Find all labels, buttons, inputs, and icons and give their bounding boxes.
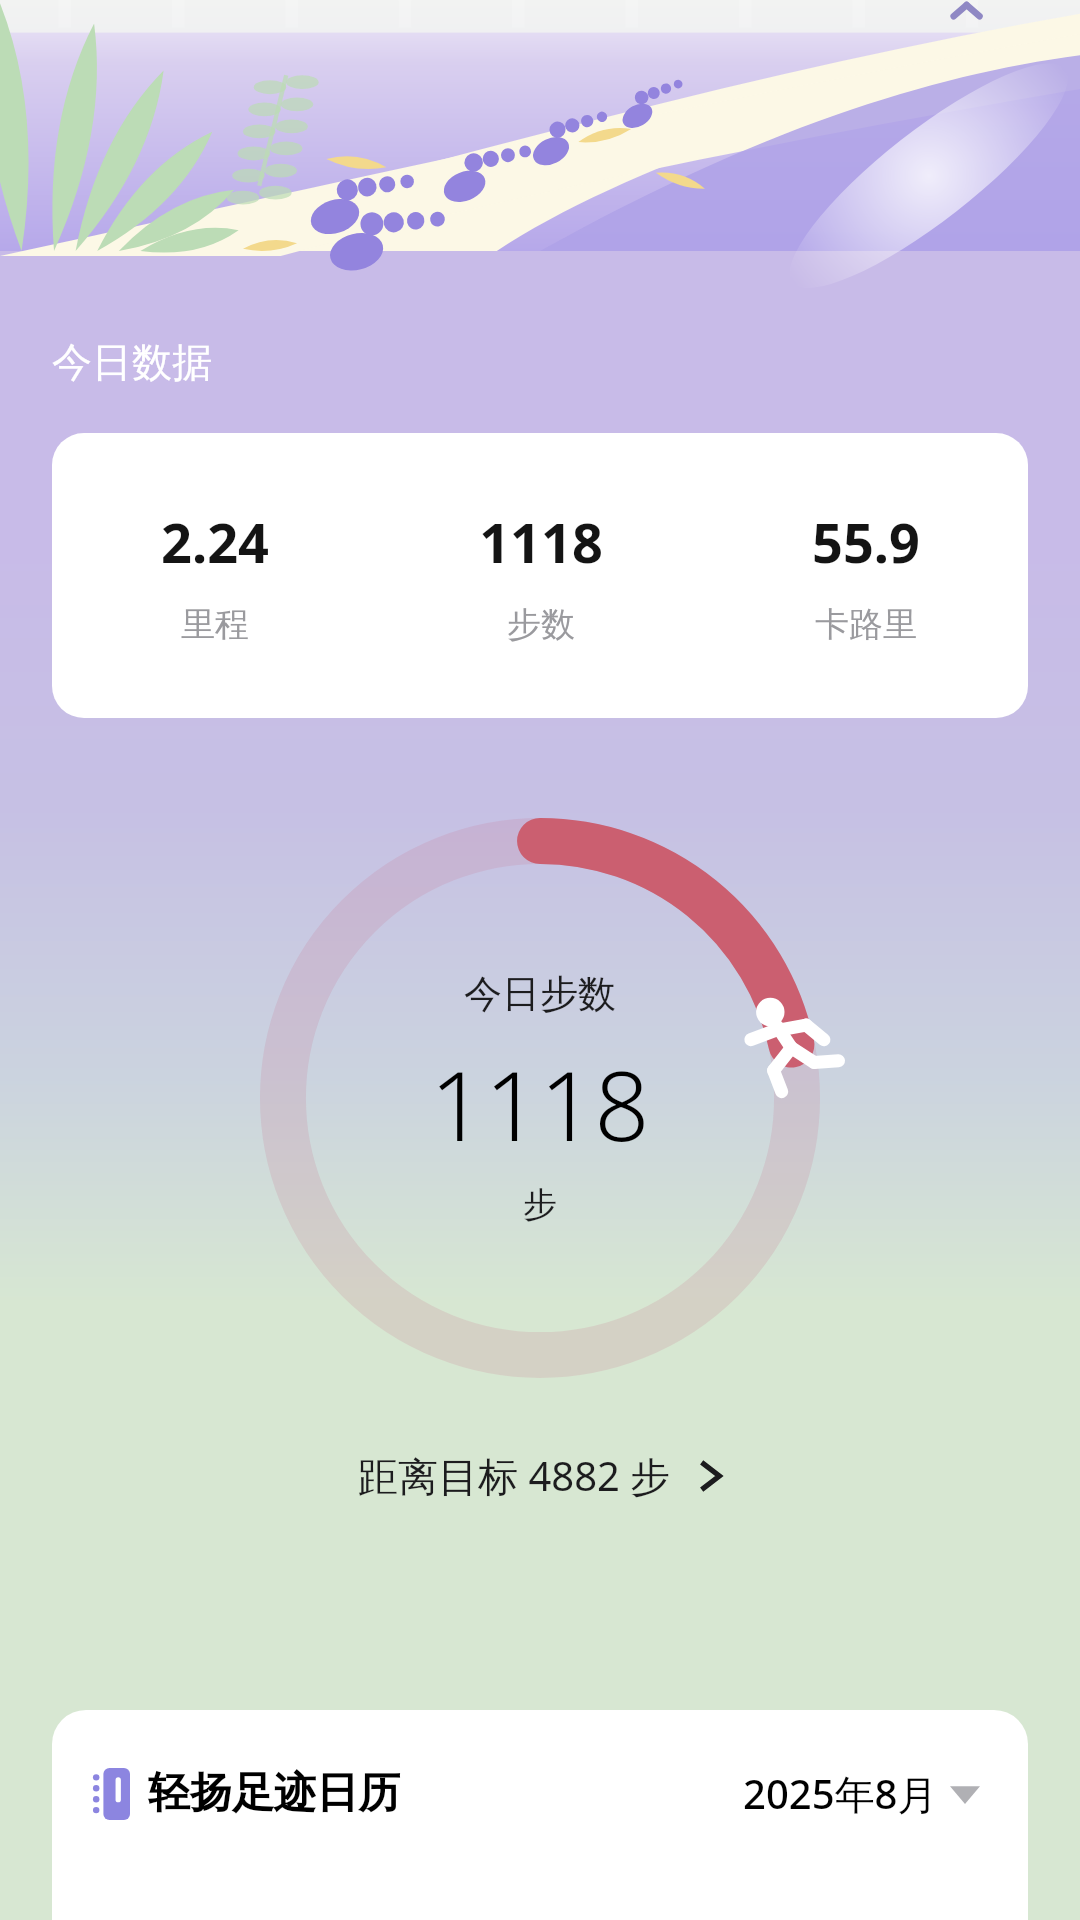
button[interactable]: 2.24 xyxy=(52,505,378,646)
staticText: 步数 xyxy=(507,603,575,646)
staticText: 步 xyxy=(523,1183,557,1226)
staticText: 1118 xyxy=(479,505,603,579)
button[interactable]: 距离目标 4882 步 xyxy=(342,1438,739,1513)
other: 日历 xyxy=(92,1768,130,1820)
staticText: 卡路里 xyxy=(815,603,917,646)
staticText: 55.9 xyxy=(812,505,920,579)
button[interactable]: 日历 xyxy=(52,1710,1028,1920)
staticText: 今日数据 xyxy=(52,337,212,387)
staticText: 1118 xyxy=(430,1038,650,1169)
staticText: 今日步数 xyxy=(464,970,616,1018)
staticText: 距离目标 4882 步 xyxy=(358,1448,671,1503)
button[interactable]: 55.9 xyxy=(703,505,1028,646)
staticText: 2.24 xyxy=(161,505,269,579)
button[interactable]: 1118 xyxy=(378,505,703,646)
staticText: 轻扬足迹日历 xyxy=(148,1767,400,1820)
button[interactable]: 2.24 xyxy=(52,433,1028,718)
staticText: 2025年8月 xyxy=(743,1766,938,1821)
staticText: 里程 xyxy=(181,603,249,646)
button[interactable]: 2025年8月 xyxy=(735,1760,988,1827)
